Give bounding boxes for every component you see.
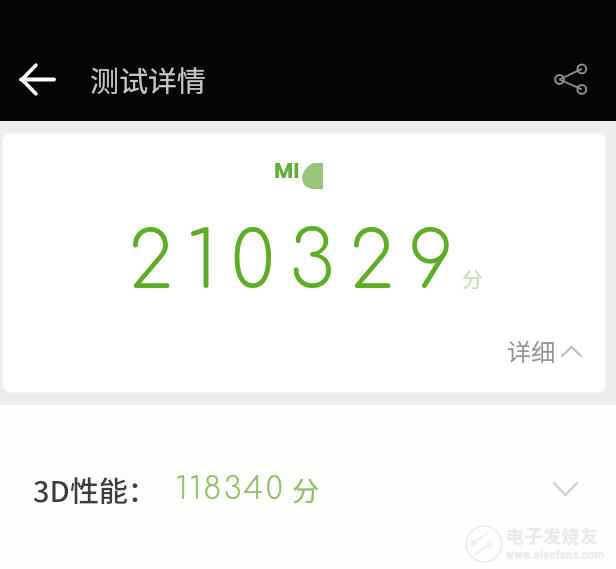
button[interactable]: 3D性能：	[0, 453, 616, 525]
button[interactable]: MI	[3, 134, 605, 392]
staticText: 测试详情	[90, 58, 207, 100]
button[interactable]: Expand 3D performance	[536, 460, 594, 518]
staticText: MI	[274, 156, 300, 185]
button[interactable]: Back	[7, 49, 67, 109]
staticText: 分	[462, 263, 483, 293]
staticText: www.elecfans.com	[506, 547, 604, 562]
staticText: 分	[292, 470, 319, 509]
button[interactable]: Share	[541, 49, 601, 109]
staticText: 118340	[176, 473, 286, 506]
staticText: 详细	[507, 333, 555, 368]
staticText: 电子发烧友	[506, 522, 599, 548]
staticText: 3D性能：	[33, 468, 157, 510]
staticText: 210329	[128, 219, 469, 306]
button[interactable]: 详细	[503, 327, 586, 374]
